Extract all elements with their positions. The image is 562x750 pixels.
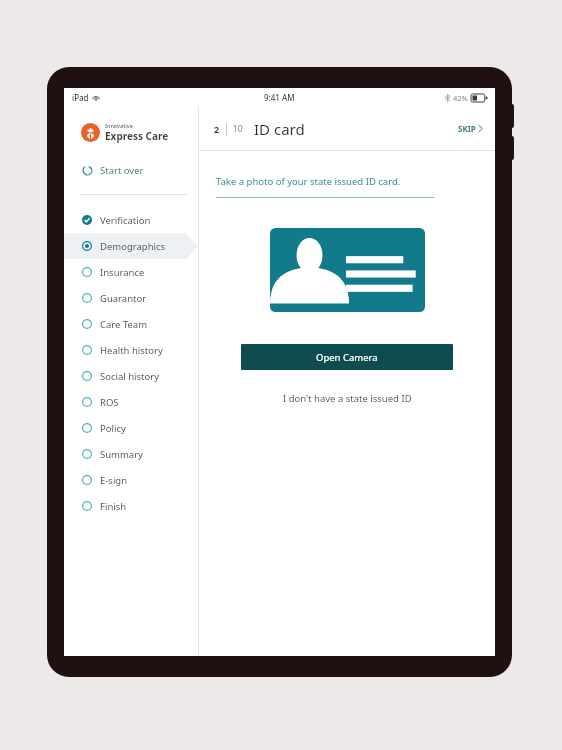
button[interactable]: Guarantor: [64, 285, 198, 311]
button[interactable]: Insurance: [64, 259, 198, 285]
button[interactable]: Open Camera: [241, 344, 453, 370]
staticText: Policy: [100, 422, 126, 435]
staticText: SKIP: [458, 123, 476, 134]
staticText: E-sign: [100, 474, 128, 487]
staticText: Demographics: [100, 240, 166, 253]
button[interactable]: Innovative: [81, 122, 169, 143]
staticText: 42%: [453, 93, 468, 103]
button[interactable]: Care Team: [64, 311, 198, 337]
staticText: 9:41 AM: [264, 92, 295, 103]
staticText: Finish: [100, 500, 127, 513]
staticText: Guarantor: [100, 292, 147, 305]
button[interactable]: Policy: [64, 415, 198, 441]
staticText: 2: [214, 123, 220, 135]
button[interactable]: E-sign: [64, 467, 198, 493]
button[interactable]: Finish: [64, 493, 198, 519]
staticText: Summary: [100, 448, 143, 461]
button[interactable]: ROS: [64, 389, 198, 415]
button[interactable]: Verification: [64, 207, 198, 233]
staticText: Verification: [100, 214, 151, 227]
staticText: Innovative: [105, 122, 133, 129]
staticText: Take a photo of your state issued ID car…: [216, 175, 401, 188]
button[interactable]: Health history: [64, 337, 198, 363]
button[interactable]: Demographics: [64, 233, 198, 259]
staticText: ROS: [100, 396, 119, 409]
button[interactable]: Social history: [64, 363, 198, 389]
staticText: ID card: [254, 119, 305, 139]
staticText: 10: [233, 123, 243, 135]
staticText: Open Camera: [316, 351, 378, 364]
staticText: iPad: [72, 92, 89, 103]
staticText: Express Care: [105, 129, 169, 143]
staticText: Care Team: [100, 318, 148, 331]
staticText: Social history: [100, 370, 160, 383]
staticText: Health history: [100, 344, 163, 357]
staticText: I don't have a state issued ID: [283, 392, 412, 405]
button[interactable]: Summary: [64, 441, 198, 467]
staticText: Insurance: [100, 266, 145, 279]
button[interactable]: I don't have a state issued ID: [273, 388, 422, 409]
button[interactable]: Start over: [64, 158, 198, 182]
button[interactable]: SKIP: [446, 115, 495, 142]
staticText: Start over: [100, 164, 144, 177]
